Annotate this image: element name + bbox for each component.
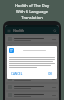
staticText: Translation (4, 15, 60, 20)
button[interactable] (6, 92, 58, 98)
button[interactable] (6, 44, 58, 50)
button[interactable]: Menu (5, 27, 59, 34)
staticText: Hadith of The Day (4, 3, 60, 8)
staticText: OK (48, 72, 53, 76)
button[interactable]: CANCEL (9, 71, 25, 77)
staticText: With 6 Language (4, 9, 60, 14)
button[interactable]: Search (53, 29, 57, 33)
button[interactable] (6, 36, 58, 42)
button[interactable]: OK (46, 71, 55, 77)
button[interactable] (6, 52, 58, 58)
staticText: Hadith (13, 28, 25, 33)
button[interactable] (6, 60, 58, 66)
button[interactable] (6, 76, 58, 82)
button[interactable]: Menu (7, 29, 11, 33)
staticText: CANCEL (11, 72, 23, 76)
button[interactable] (6, 68, 58, 74)
button[interactable] (6, 84, 58, 90)
